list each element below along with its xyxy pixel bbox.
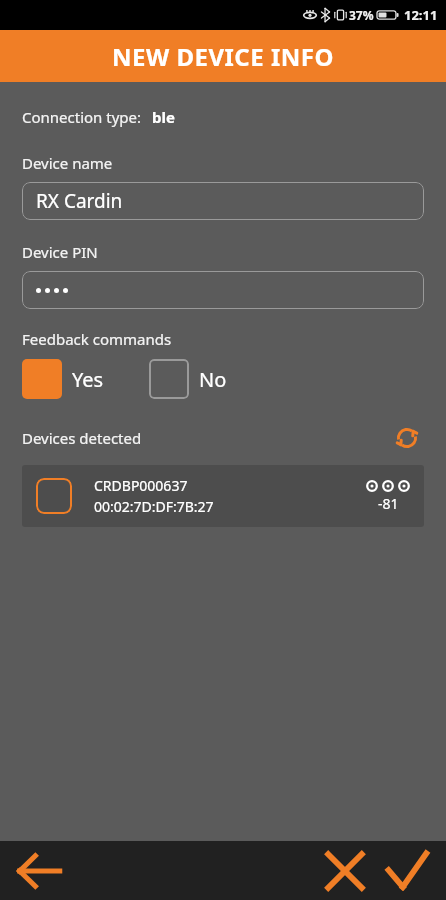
staticText: ble (152, 107, 175, 127)
button[interactable]: Refresh device scan (390, 421, 424, 455)
staticText: CRDBP000637 (94, 476, 188, 495)
staticText: Devices detected (22, 428, 142, 448)
button[interactable]: RX Cardin (22, 182, 424, 220)
staticText: Connection type: (22, 107, 142, 127)
staticText: NEW DEVICE INFO (112, 40, 334, 73)
staticText: No (199, 366, 227, 393)
button[interactable]: CRDBP000637 (22, 465, 424, 527)
staticText: RX Cardin (36, 188, 123, 214)
button[interactable]: Yes (22, 359, 104, 399)
staticText: -81 (378, 494, 399, 513)
staticText: Device name (22, 153, 113, 173)
button[interactable]: No (149, 359, 227, 399)
button[interactable] (22, 271, 424, 309)
button[interactable]: Confirm (376, 841, 438, 900)
staticText: 37% (349, 7, 374, 23)
button[interactable]: Back (8, 841, 70, 900)
button[interactable]: Cancel (314, 841, 376, 900)
staticText: 00:02:7D:DF:7B:27 (94, 497, 214, 516)
staticText: Yes (72, 366, 104, 393)
staticText: 12:11 (404, 6, 438, 24)
staticText: Device PIN (22, 242, 98, 262)
staticText: Feedback commands (22, 329, 172, 349)
